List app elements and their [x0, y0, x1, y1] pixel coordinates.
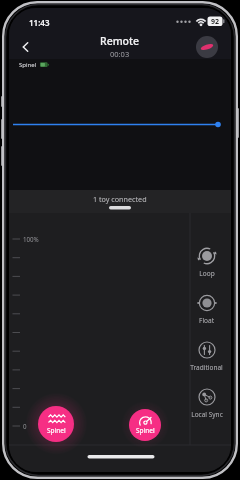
staticText: Local Sync	[191, 410, 223, 419]
button[interactable]: Spinel	[129, 409, 161, 441]
staticText: 11:43	[29, 17, 50, 28]
button[interactable]	[196, 36, 218, 58]
staticText: Spinel	[136, 426, 155, 435]
staticText: Float	[199, 316, 214, 325]
staticText: 100%	[23, 235, 39, 243]
button[interactable]	[17, 38, 35, 56]
staticText: 0	[23, 422, 27, 430]
staticText: Traditional	[190, 363, 223, 372]
button[interactable]	[104, 202, 136, 213]
button[interactable]: Spinel	[19, 61, 50, 69]
button[interactable]: Float	[189, 291, 224, 327]
button[interactable]: Loop	[189, 244, 224, 280]
staticText: Loop	[199, 269, 215, 278]
staticText: Spinel	[47, 426, 66, 435]
staticText: Spinel	[19, 61, 37, 69]
staticText: 92	[211, 17, 220, 27]
staticText: Remote	[100, 34, 140, 48]
button[interactable]: Spinel	[38, 406, 74, 442]
staticText: 1 toy connected	[93, 194, 147, 204]
button[interactable]: Traditional	[189, 338, 224, 374]
staticText: 00:03	[110, 49, 130, 59]
button[interactable]: Local Sync	[189, 385, 224, 421]
